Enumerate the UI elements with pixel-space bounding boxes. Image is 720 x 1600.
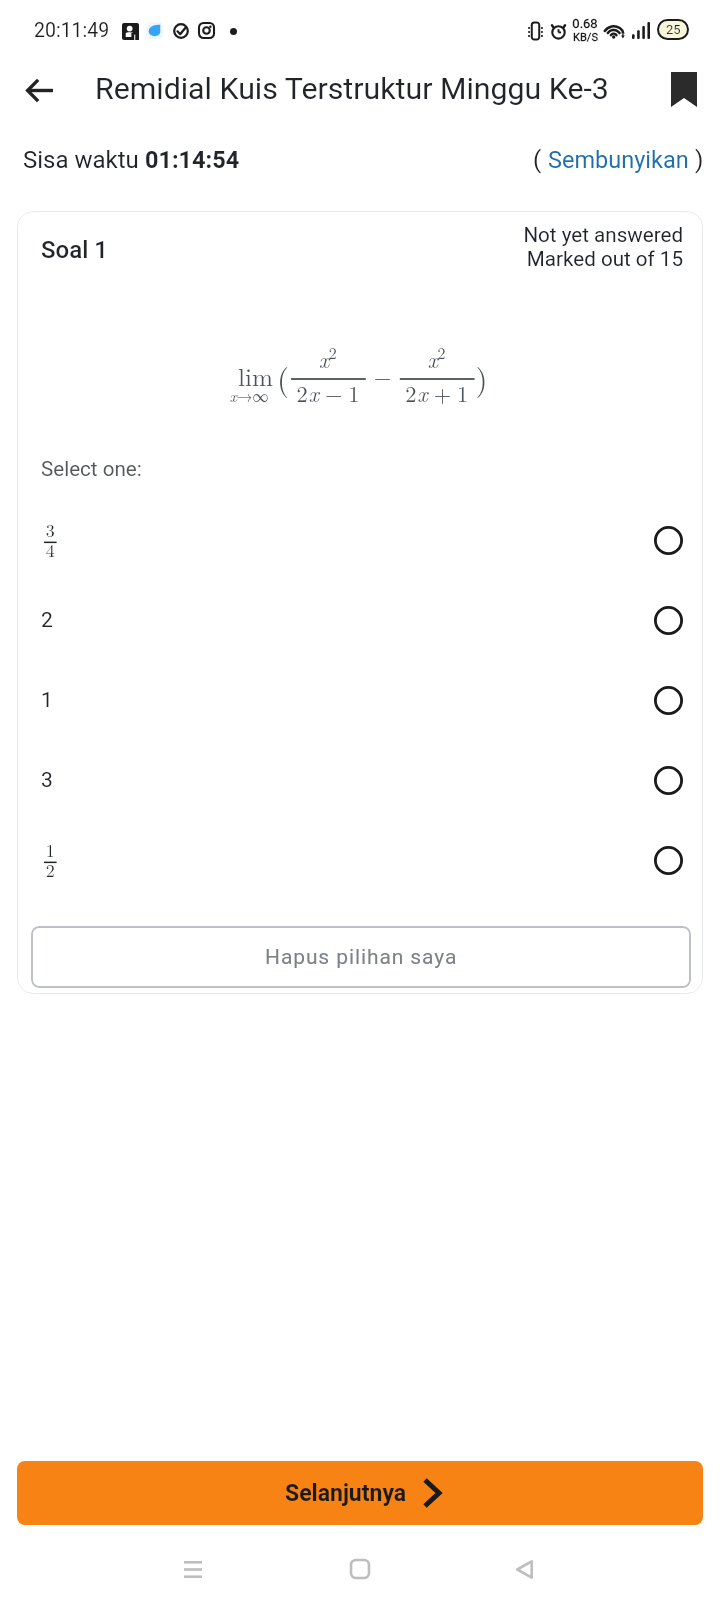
staticText: (	[533, 146, 548, 174]
staticText: Not yet answered	[523, 223, 683, 247]
button[interactable]	[17, 500, 703, 580]
staticText: 01:14:54	[145, 146, 240, 174]
staticText: Hapus pilihan saya	[265, 945, 458, 970]
button[interactable]	[17, 820, 703, 900]
staticText: KB/S	[573, 31, 598, 44]
staticText: Soal 1	[41, 236, 108, 264]
staticText: Marked out of 15	[526, 247, 683, 271]
staticText: 0.68	[572, 16, 598, 31]
staticText: 3	[41, 768, 53, 793]
button[interactable]: (	[533, 146, 704, 174]
button[interactable]: 1	[17, 660, 703, 740]
button[interactable]: Bookmark	[657, 62, 711, 116]
button[interactable]: Back	[13, 64, 66, 117]
staticText: 25	[666, 22, 681, 37]
button[interactable]: Back	[484, 1545, 564, 1593]
staticText: 20:11:49	[34, 19, 110, 42]
button[interactable]: Recent apps	[153, 1545, 233, 1593]
staticText: Select one:	[41, 457, 142, 481]
button[interactable]: Selanjutnya	[17, 1461, 703, 1525]
staticText: Sisa waktu	[23, 146, 145, 174]
staticText: Selanjutnya	[285, 1480, 407, 1507]
staticText: 2	[41, 608, 53, 633]
staticText: Sembunyikan	[548, 146, 689, 174]
button[interactable]: 2	[17, 580, 703, 660]
button[interactable]: 3	[17, 740, 703, 820]
staticText: Remidial Kuis Terstruktur Minggu Ke-3	[95, 71, 609, 107]
staticText: 1	[41, 688, 53, 713]
button[interactable]: Home	[320, 1545, 400, 1593]
staticText: )	[689, 146, 704, 174]
button[interactable]: Hapus pilihan saya	[31, 926, 691, 988]
